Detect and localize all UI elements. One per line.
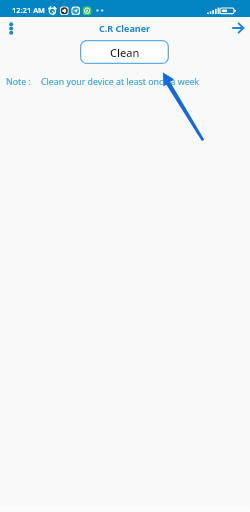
button[interactable]: Clean [80,40,169,64]
button[interactable]: More options [2,17,21,39]
button[interactable]: Next [228,18,248,38]
staticText: C.R Cleaner [99,22,151,34]
staticText: Note : [6,76,31,88]
staticText: Clean your device at least once a week [41,76,200,88]
staticText: Clean [110,45,140,60]
staticText: 12:21 AM [12,5,45,15]
